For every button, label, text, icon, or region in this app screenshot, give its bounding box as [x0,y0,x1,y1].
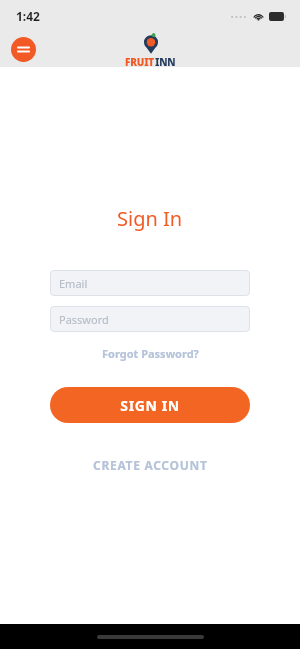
button[interactable]: CREATE ACCOUNT [85,453,216,477]
staticText: Forgot Password? [102,346,199,361]
staticText: INN [155,55,176,69]
staticText: FRUIT [125,55,155,69]
button[interactable]: Forgot Password? [96,344,205,363]
button[interactable]: Password [50,306,250,332]
button[interactable]: Menu [11,37,36,62]
staticText: Email [59,276,88,291]
staticText: Sign In [117,205,183,232]
staticText: SIGN IN [120,396,180,415]
button[interactable]: Email [50,270,250,296]
staticText: CREATE ACCOUNT [93,457,208,473]
staticText: 1:42 [16,8,40,24]
staticText: Password [59,312,109,327]
button[interactable]: SIGN IN [50,387,250,423]
